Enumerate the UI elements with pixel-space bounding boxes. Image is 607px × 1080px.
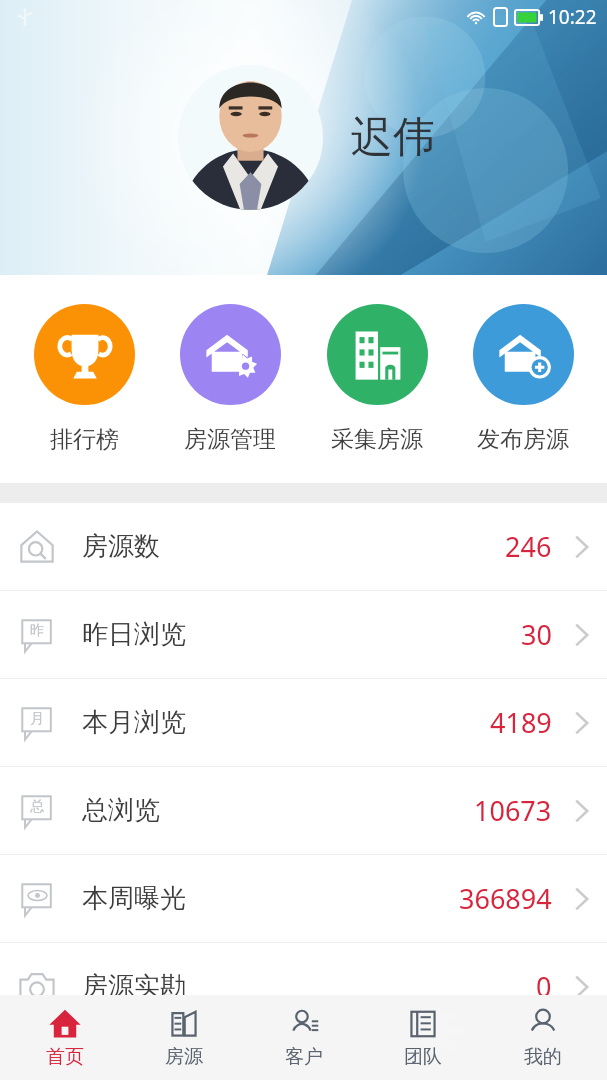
staticText: 本月浏览 <box>82 706 186 739</box>
staticText: 本周曝光 <box>82 882 186 915</box>
staticText: 发布房源 <box>477 425 569 454</box>
button[interactable]: 首页 <box>10 995 120 1080</box>
staticText: 30 <box>521 616 552 653</box>
button[interactable]: 房源数 <box>0 503 607 590</box>
staticText: 首页 <box>46 1045 84 1069</box>
staticText: 10:22 <box>548 4 597 30</box>
staticText: 246 <box>505 528 552 565</box>
staticText: 房源 <box>165 1045 203 1069</box>
button[interactable]: 昨 <box>0 591 607 678</box>
button[interactable]: 客户 <box>249 995 359 1080</box>
button[interactable]: 房源 <box>129 995 239 1080</box>
staticText: 0 <box>536 968 552 1005</box>
staticText: 总浏览 <box>82 794 160 827</box>
staticText: 昨日浏览 <box>82 618 186 651</box>
staticText: 366894 <box>459 880 552 917</box>
staticText: 总 <box>30 798 44 816</box>
button[interactable]: Profile photo <box>178 65 323 210</box>
staticText: 房源管理 <box>184 425 276 454</box>
button[interactable]: 排行榜 <box>22 298 146 460</box>
staticText: 4189 <box>490 704 552 741</box>
staticText: 团队 <box>404 1045 442 1069</box>
staticText: 排行榜 <box>50 425 119 454</box>
staticText: 10673 <box>474 792 552 829</box>
button[interactable]: 月 <box>0 679 607 766</box>
staticText: 月 <box>30 710 44 728</box>
button[interactable]: 房源实勘 <box>0 943 607 1030</box>
button[interactable]: 发布房源 <box>461 298 585 460</box>
button[interactable]: 我的 <box>488 995 598 1080</box>
staticText: 昨 <box>30 622 44 640</box>
button[interactable]: 团队 <box>368 995 478 1080</box>
staticText: 采集房源 <box>331 425 423 454</box>
staticText: 我的 <box>524 1045 562 1069</box>
staticText: 客户 <box>285 1045 323 1069</box>
staticText: 迟伟 <box>351 111 435 164</box>
staticText: 房源实勘 <box>82 970 186 1003</box>
button[interactable]: 采集房源 <box>315 298 439 460</box>
button[interactable]: 总 <box>0 767 607 854</box>
button[interactable]: 本周曝光 <box>0 855 607 942</box>
button[interactable]: 房源管理 <box>168 298 292 460</box>
staticText: 房源数 <box>82 530 160 563</box>
